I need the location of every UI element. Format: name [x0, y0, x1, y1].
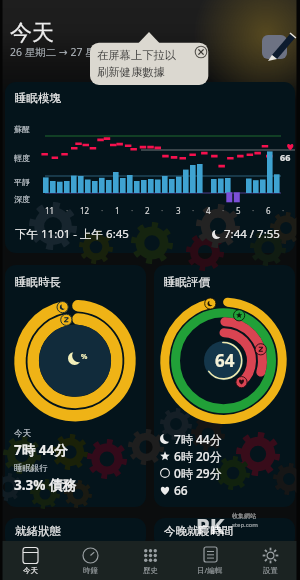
staticText: 今晚就寢時間 — [164, 524, 233, 538]
staticText: · — [222, 205, 225, 216]
staticText: · — [282, 205, 285, 216]
staticText: 12 — [80, 205, 90, 216]
staticText: 刷新健康數據 — [97, 65, 165, 79]
staticText: · — [101, 205, 104, 216]
button[interactable]: 睡眠時長 — [5, 265, 146, 507]
staticText: 64 — [215, 349, 235, 371]
staticText: 收集網站 — [232, 512, 256, 520]
staticText: 就緒狀態 — [15, 524, 61, 538]
button[interactable]: 就緒狀態 — [5, 518, 146, 548]
button[interactable]: 睡眠模塊 — [5, 82, 295, 253]
staticText: 深度 — [14, 194, 30, 204]
staticText: 睡眠銀行 — [14, 463, 48, 474]
staticText: 平靜 — [14, 177, 30, 187]
staticText: 2 — [145, 205, 150, 216]
staticText: 日/編輯 — [197, 565, 223, 575]
staticText: 6時 20分 — [174, 448, 222, 464]
staticText: 1 — [115, 205, 120, 216]
staticText: % — [81, 352, 88, 362]
staticText: 0時 29分 — [174, 465, 222, 481]
staticText: · — [66, 205, 69, 216]
staticText: 時鐘 — [83, 566, 98, 575]
staticText: 蘇醒 — [14, 124, 30, 134]
staticText: 7時 44分 — [174, 431, 222, 447]
button[interactable]: 今天 — [0, 541, 60, 580]
button[interactable]: Edit — [262, 35, 287, 59]
button[interactable]: 歷史 — [120, 541, 180, 580]
staticText: 66 — [174, 482, 188, 498]
button[interactable]: Close — [194, 45, 208, 59]
button[interactable]: 設置 — [240, 541, 300, 580]
staticText: 3 — [176, 205, 181, 216]
staticText: step.com — [232, 521, 258, 529]
staticText: 4 — [206, 205, 211, 216]
staticText: 設置 — [263, 566, 278, 575]
staticText: 5 — [236, 205, 241, 216]
staticText: 歷史 — [143, 566, 158, 575]
staticText: · — [161, 205, 164, 216]
staticText: 今天 — [23, 566, 38, 575]
staticText: 11 — [45, 205, 55, 216]
staticText: 睡眠模塊 — [15, 91, 61, 105]
button[interactable]: 睡眠評價 — [154, 265, 295, 507]
staticText: 今天 — [14, 428, 31, 439]
staticText: 睡眠時長 — [15, 275, 61, 289]
staticText: 3.3% 債務 — [14, 476, 76, 494]
staticText: 7:44 / 7:55 — [224, 226, 280, 242]
staticText: 7時 44分 — [14, 441, 68, 459]
staticText: 6 — [266, 205, 271, 216]
staticText: 下午 11:01 - 上午 6:45 — [15, 226, 129, 242]
staticText: 輕度 — [14, 153, 30, 163]
staticText: 66 — [280, 151, 291, 163]
button[interactable]: 日/編輯 — [180, 541, 240, 580]
staticText: 在屏幕上下拉以 — [97, 48, 177, 62]
button[interactable]: 今晚就寢時間 — [154, 518, 295, 548]
staticText: PK — [196, 510, 225, 540]
staticText: · — [192, 205, 195, 216]
staticText: 26 星期二 → 27 星期三 — [10, 45, 117, 59]
button[interactable]: 時鐘 — [60, 541, 120, 580]
staticText: · — [131, 205, 134, 216]
staticText: 睡眠評價 — [164, 275, 210, 289]
staticText: · — [252, 205, 255, 216]
staticText: 今天 — [10, 19, 54, 47]
